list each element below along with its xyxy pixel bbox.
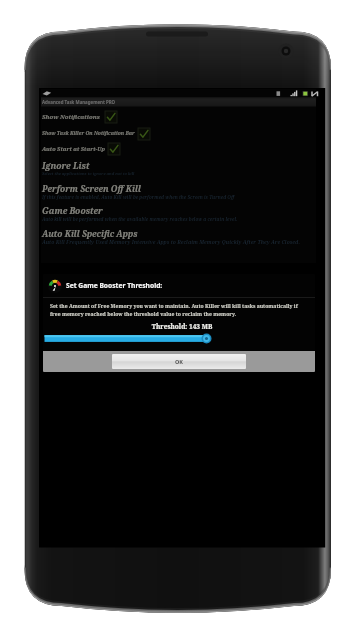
staticText: Set Game Booster Threshold: (66, 281, 163, 290)
button[interactable]: Perform Screen Off Kill (41, 183, 316, 206)
staticText: Show Task Killer On Notification Bar (42, 130, 135, 137)
staticText: free memory reached below the threshold … (50, 311, 236, 318)
button[interactable]: Auto Kill Specific Apps (41, 228, 316, 251)
button[interactable]: Auto Start at Start-Up (41, 141, 316, 157)
staticText: Auto Kill Specific Apps (42, 228, 138, 239)
staticText: Auto Start at Start-Up (42, 145, 105, 153)
other: Enabled (108, 143, 120, 155)
button[interactable]: Show Notifications (41, 109, 316, 125)
staticText: Perform Screen Off Kill (42, 183, 141, 194)
staticText: Advanced Task Management PRO (42, 99, 116, 105)
button[interactable]: Free memory threshold slider (43, 333, 315, 344)
button[interactable]: Advanced Task Management PRO (41, 97, 316, 107)
staticText: Game Booster (42, 205, 103, 217)
staticText: Show Notifications (42, 113, 100, 121)
button[interactable]: Ignore List (41, 160, 316, 183)
button[interactable]: Game Booster (41, 205, 316, 228)
other: Enabled (105, 111, 117, 123)
other: Enabled (138, 128, 150, 140)
staticText: Ignore List (42, 160, 90, 172)
staticText: Auto kill will be performed when the ava… (42, 216, 238, 222)
staticText: Threshold: 143 MB (46, 322, 315, 331)
staticText: If this feature is enabled, Auto Kill wi… (42, 194, 235, 200)
button[interactable]: OK (112, 354, 246, 369)
staticText: Set the Amount of Free Memory you want t… (50, 303, 298, 310)
staticText: Select the applications to ignore and no… (42, 171, 135, 176)
staticText: Auto Kill Frequently Used Memory Intensi… (42, 239, 300, 246)
staticText: OK (175, 358, 184, 365)
button[interactable]: Show Task Killer On Notification Bar (41, 126, 316, 141)
